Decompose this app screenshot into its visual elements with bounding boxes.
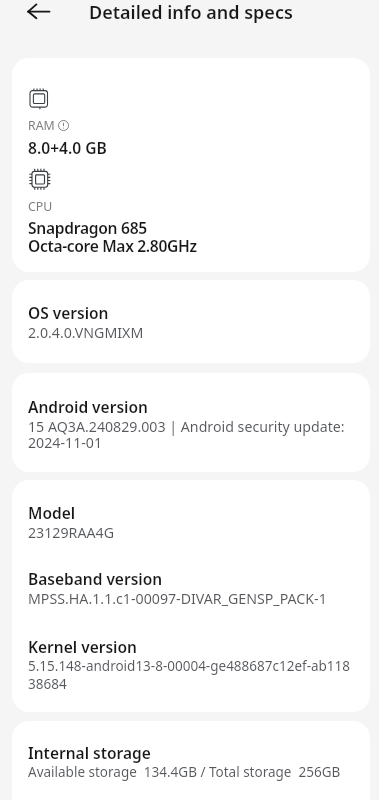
staticText: CPU bbox=[28, 198, 53, 215]
staticText: OS version bbox=[28, 302, 109, 323]
button[interactable]: OS version bbox=[12, 280, 370, 363]
staticText: 38684 bbox=[28, 675, 67, 693]
staticText: Snapdragon 685 bbox=[28, 217, 147, 238]
staticText: Internal storage bbox=[28, 742, 151, 763]
staticText: Octa-core Max 2.80GHz bbox=[28, 235, 197, 256]
staticText: 2024-11-01 bbox=[28, 433, 103, 452]
staticText: 23129RAA4G bbox=[28, 523, 114, 542]
staticText: Available storage 134.4GB / Total storag… bbox=[28, 763, 341, 781]
staticText: 2.0.4.0.VNGMIXM bbox=[28, 323, 144, 342]
staticText: Baseband version bbox=[28, 568, 163, 589]
button[interactable]: Model bbox=[12, 480, 370, 712]
staticText: Model bbox=[28, 502, 76, 523]
staticText: 15 AQ3A.240829.003 | Android security up… bbox=[28, 417, 345, 436]
staticText: 8.0+4.0 GB bbox=[28, 137, 107, 158]
staticText: Detailed info and specs bbox=[89, 0, 293, 25]
staticText: Kernel version bbox=[28, 636, 137, 657]
staticText: Android version bbox=[28, 396, 148, 417]
staticText: RAM bbox=[28, 117, 55, 134]
button[interactable]: Internal storage bbox=[12, 721, 370, 800]
button[interactable]: RAM bbox=[12, 58, 370, 272]
staticText: 5.15.148-android13-8-00004-ge488687c12ef… bbox=[28, 657, 351, 675]
staticText: MPSS.HA.1.1.c1-00097-DIVAR_GENSP_PACK-1 bbox=[28, 589, 327, 608]
button[interactable]: Navigate back bbox=[24, 0, 56, 46]
button[interactable]: Android version bbox=[12, 373, 370, 472]
